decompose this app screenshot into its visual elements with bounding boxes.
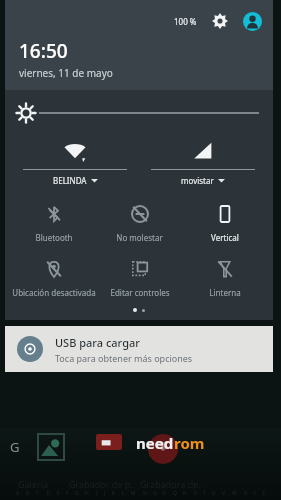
staticText: Grabadora de.. — [140, 478, 204, 490]
staticText: K — [112, 490, 116, 497]
button[interactable]: BELINDA — [23, 138, 127, 186]
staticText: U — [212, 490, 216, 497]
staticText: G — [10, 438, 20, 456]
staticText: O — [153, 490, 157, 497]
staticText: V — [222, 490, 226, 497]
staticText: G — [75, 490, 79, 497]
button[interactable]: Editar controles — [97, 255, 182, 300]
button[interactable]: Galería — [36, 432, 66, 462]
staticText: Toca para obtener más opciones — [55, 352, 193, 364]
staticText: Y — [253, 490, 256, 497]
button[interactable]: Brightness — [17, 100, 259, 126]
staticText: need — [136, 433, 174, 453]
button[interactable]: movistar — [151, 138, 255, 186]
button[interactable]: Linterna — [182, 255, 267, 300]
staticText: Q — [173, 490, 177, 497]
staticText: S — [194, 490, 197, 497]
staticText: B — [26, 490, 30, 497]
staticText: Z — [262, 490, 265, 497]
button[interactable]: 16:50 — [19, 38, 113, 80]
staticText: T — [203, 490, 206, 497]
staticText: USB para cargar — [55, 335, 140, 350]
button[interactable]: Ubicación desactivada — [11, 255, 97, 300]
staticText: F — [66, 490, 69, 497]
staticText: C — [36, 490, 40, 497]
button[interactable]: Grabador de pantalla — [94, 432, 124, 462]
staticText: D — [47, 490, 51, 497]
staticText: P — [163, 490, 167, 497]
staticText: rom — [174, 433, 205, 453]
staticText: H — [85, 490, 89, 497]
button[interactable]: USB para cargar — [5, 326, 273, 372]
staticText: Grabador de p.. — [69, 478, 136, 490]
staticText: W — [232, 490, 237, 497]
staticText: movistar — [181, 175, 214, 186]
staticText: L — [122, 490, 125, 497]
button[interactable]: Vertical — [182, 200, 267, 245]
staticText: A — [16, 490, 20, 497]
staticText: Galería — [18, 478, 49, 490]
staticText: Ubicación desactivada — [12, 287, 96, 298]
button[interactable]: User account — [241, 10, 263, 32]
staticText: I — [96, 490, 98, 497]
staticText: M — [131, 490, 136, 497]
staticText: X — [244, 490, 247, 497]
staticText: Bluetooth — [35, 232, 73, 243]
staticText: Vertical — [211, 232, 239, 243]
staticText: Linterna — [209, 287, 241, 298]
staticText: Editar controles — [110, 287, 170, 298]
button[interactable]: Grabadora de sonido — [146, 432, 180, 466]
staticText: 16:50 — [19, 38, 68, 64]
staticText: 100 % — [174, 16, 197, 27]
staticText: BELINDA — [53, 175, 87, 186]
button[interactable]: No molestar — [97, 200, 182, 245]
button[interactable]: Bluetooth — [11, 200, 97, 245]
staticText: E — [57, 490, 60, 497]
staticText: R — [183, 490, 187, 497]
staticText: J — [104, 490, 106, 497]
staticText: N — [143, 490, 147, 497]
button[interactable]: Settings — [209, 10, 231, 32]
staticText: viernes, 11 de mayo — [19, 66, 113, 80]
staticText: No molestar — [116, 232, 163, 243]
